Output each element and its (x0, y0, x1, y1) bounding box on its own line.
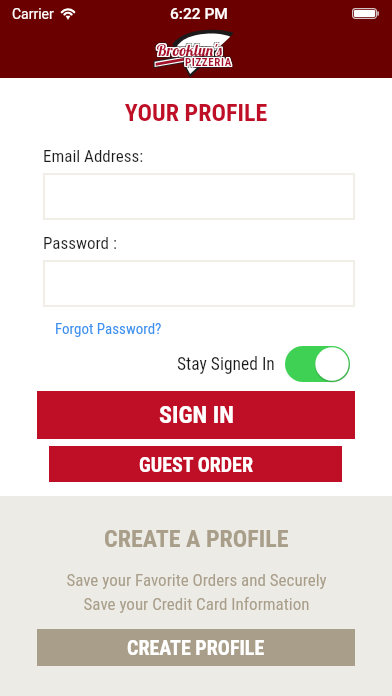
staticText: PIZZERIA (185, 58, 232, 71)
staticText: PIZZERIA (186, 55, 233, 68)
button[interactable]: Stay Signed In toggle (285, 346, 350, 382)
staticText: Brooklyn's (156, 39, 223, 58)
staticText: SIGN IN (159, 401, 234, 429)
staticText: Brooklyn's (157, 39, 224, 58)
staticText: PIZZERIA (187, 58, 234, 71)
staticText: Brooklyn's (156, 38, 223, 57)
staticText: Brooklyn's (156, 41, 223, 60)
staticText: PIZZERIA (185, 56, 232, 69)
staticText: Brooklyn's (154, 42, 221, 61)
staticText: PIZZERIA (184, 55, 231, 68)
staticText: PIZZERIA (185, 57, 232, 70)
staticText: PIZZERIA (186, 56, 233, 69)
staticText: Brooklyn's (156, 40, 223, 59)
staticText: 6:22 PM (170, 5, 228, 23)
staticText: Password : (43, 233, 117, 253)
staticText: Brooklyn's (155, 40, 222, 59)
staticText: Brooklyn's (157, 41, 224, 60)
button[interactable]: Forgot Password? (55, 320, 162, 338)
button[interactable] (43, 173, 355, 220)
staticText: Brooklyn's (158, 42, 225, 61)
staticText: Save your Favorite Orders and Securely S… (66, 570, 327, 614)
staticText: PIZZERIA (183, 56, 230, 69)
staticText: PIZZERIA (185, 54, 232, 67)
staticText: PIZZERIA (186, 57, 233, 70)
staticText: PIZZERIA (183, 58, 230, 71)
staticText: Brooklyn's (155, 39, 222, 58)
staticText: Stay Signed In (177, 354, 275, 375)
staticText: Brooklyn's (154, 38, 221, 57)
staticText: Brooklyn's (158, 40, 225, 59)
button[interactable]: CREATE PROFILE (37, 629, 355, 666)
staticText: PIZZERIA (184, 57, 231, 70)
staticText: PIZZERIA (183, 54, 230, 67)
staticText: PIZZERIA (187, 54, 234, 67)
staticText: GUEST ORDER (139, 453, 253, 476)
staticText: Brooklyn's (154, 40, 221, 59)
staticText: PIZZERIA (187, 56, 234, 69)
staticText: Forgot Password? (55, 320, 162, 338)
staticText: Email Address: (43, 146, 144, 166)
button[interactable]: GUEST ORDER (49, 446, 342, 482)
staticText: YOUR PROFILE (0, 99, 392, 127)
button[interactable]: SIGN IN (37, 391, 355, 439)
staticText: PIZZERIA (184, 56, 231, 69)
staticText: PIZZERIA (185, 55, 232, 68)
staticText: Carrier (12, 6, 54, 22)
staticText: Brooklyn's (156, 42, 223, 61)
staticText: Brooklyn's (158, 38, 225, 57)
button[interactable] (43, 260, 355, 307)
staticText: Brooklyn's (155, 41, 222, 60)
staticText: CREATE PROFILE (127, 636, 265, 659)
staticText: CREATE A PROFILE (104, 525, 289, 553)
staticText: Brooklyn's (157, 40, 224, 59)
